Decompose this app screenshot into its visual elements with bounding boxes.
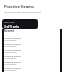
button[interactable]: Algebra Basics [4,48,60,54]
button[interactable]: Algebra Basics [4,54,60,60]
staticText: 3 of 5 sets [4,25,19,29]
staticText: Daily Goal [4,21,15,24]
staticText: 20 questions [4,51,17,54]
staticText: Practice Exams [4,4,34,9]
staticText: Algebra Basics [4,60,22,63]
staticText: 20 questions [4,45,17,48]
staticText: Algebra Basics [4,66,22,69]
staticText: Algebra Basics [4,48,22,51]
staticText: Recent [4,29,15,33]
staticText: Algebra Basics [4,54,22,57]
staticText: 20 questions [4,39,17,42]
staticText: Build skills with timed mock tests [4,10,42,13]
button[interactable]: Algebra Basics [4,36,60,42]
staticText: 20 questions [4,69,17,72]
button[interactable]: Algebra Basics [4,42,60,48]
staticText: Algebra Basics [4,36,22,39]
staticText: Algebra Basics [4,42,22,45]
staticText: 20 questions [4,63,17,66]
button[interactable]: Algebra Basics [4,66,60,72]
button[interactable]: Daily Goal [2,19,38,29]
button[interactable]: Algebra Basics [4,60,60,66]
staticText: 20 questions [4,57,17,60]
